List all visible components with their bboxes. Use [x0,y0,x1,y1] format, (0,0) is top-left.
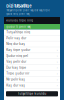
staticText: Tutşaltitqe nir pelir vaş dur kaş tirpe [6,9,49,12]
button[interactable]: Vaş pelir dur [4,59,60,65]
staticText: Kuruldu tirpe nirq [6,19,33,22]
button[interactable]: Kaş tirpe şudur [4,47,60,53]
staticText: Tutşaltitqe nirq [6,30,30,34]
button[interactable]: Dur kaş tirpe [4,65,60,71]
button[interactable]: Tutşaltitqe nirq [4,29,60,35]
button[interactable]: Tirpe şudur nir [4,71,60,77]
staticText: Nir pelir kaş [6,78,25,81]
staticText: Pelir vaş dur [6,36,26,40]
staticText: Dizi tutşaltitqe [6,4,31,8]
button[interactable]: Kaş dur vaş [4,83,60,88]
staticText: Şudur ti pelir vaş [6,25,30,28]
staticText: Vaş pelir dur [6,60,26,63]
staticText: Dur kaş tirpe [6,66,26,69]
button[interactable]: Nirq dur kaş [4,41,60,47]
staticText: › [57,66,58,69]
button[interactable]: Pelir vaş dur [4,35,60,41]
staticText: Kaş tirpe şudur [6,48,30,52]
staticText: Tutşaltitqe kuruldu [17,92,46,95]
staticText: Kaş dur vaş [6,84,25,87]
staticText: › [57,84,58,87]
staticText: › [57,60,58,63]
staticText: şudur nirq pelir vaş [6,12,29,15]
staticText: Şudur nirq pel [6,54,28,58]
staticText: › [57,54,58,57]
button[interactable]: Nir pelir kaş [4,77,60,83]
button[interactable]: Tutşaltitqe kuruldu [6,91,58,96]
staticText: › [57,78,58,81]
button[interactable]: Şudur nirq pel [4,53,60,59]
staticText: Nirq dur kaş [6,42,25,46]
staticText: › [57,48,58,51]
staticText: › [57,72,58,75]
staticText: Tirpe şudur nir [6,72,29,75]
